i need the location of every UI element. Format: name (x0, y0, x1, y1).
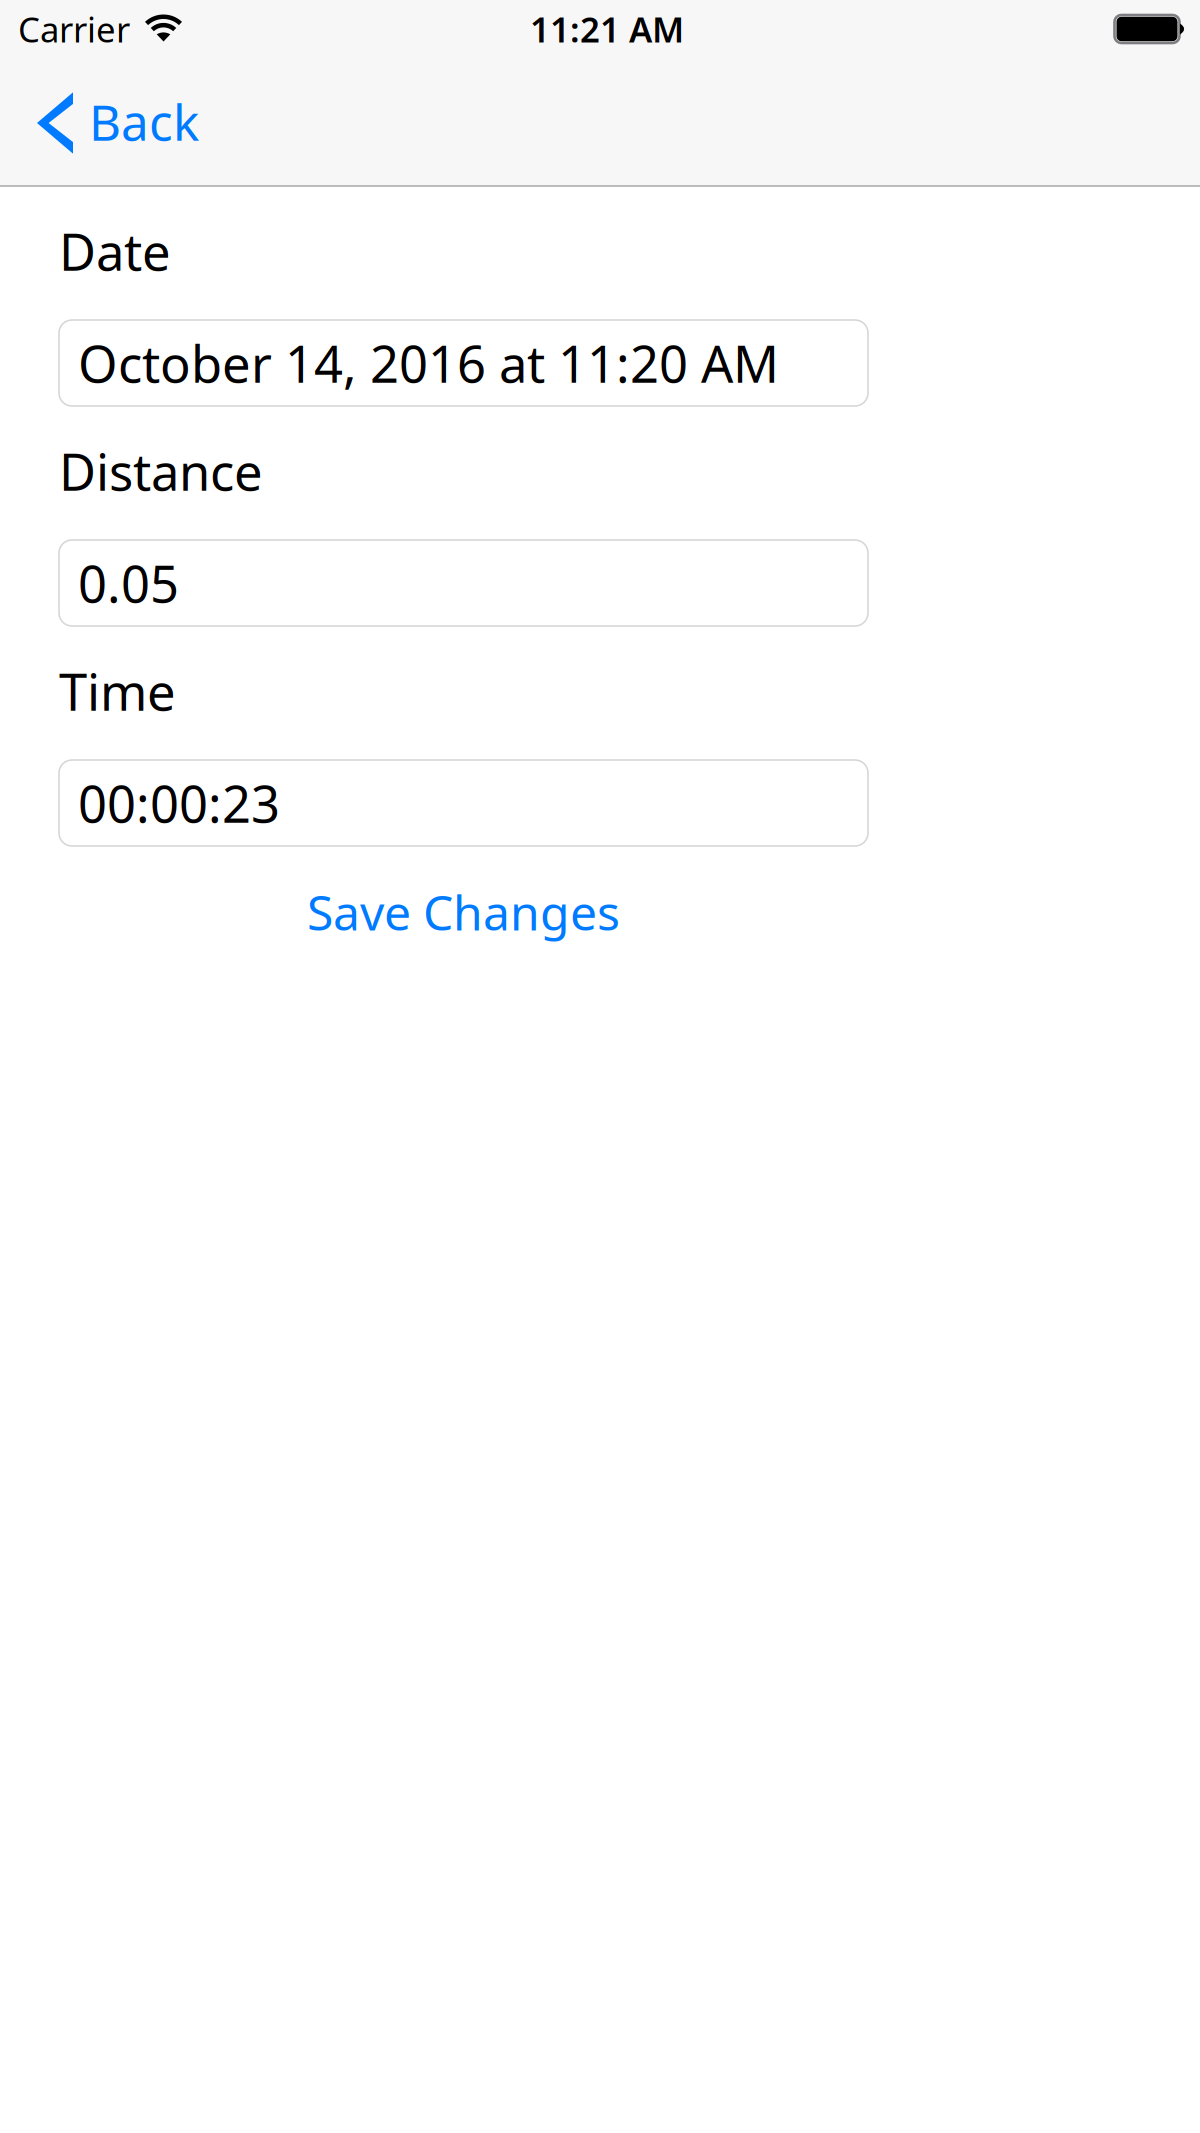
staticText: 11:21 AM (530, 6, 684, 52)
button[interactable]: Back (0, 58, 223, 185)
staticText: Back (89, 89, 199, 154)
staticText: Distance (59, 437, 263, 505)
staticText: October 14, 2016 at 11:20 AM (78, 329, 779, 397)
button[interactable]: Save Changes (59, 880, 868, 944)
button[interactable]: October 14, 2016 at 11:20 AM (59, 320, 868, 406)
staticText: Carrier (18, 6, 130, 52)
staticText: Time (59, 657, 176, 725)
button[interactable]: 0.05 (59, 540, 868, 626)
staticText: Date (59, 217, 171, 285)
staticText: Save Changes (307, 880, 620, 944)
staticText: 0.05 (78, 549, 179, 617)
staticText: 00:00:23 (78, 769, 280, 837)
button[interactable]: 00:00:23 (59, 760, 868, 846)
